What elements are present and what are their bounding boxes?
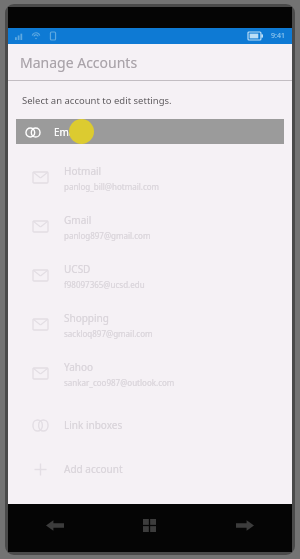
- staticText: 9:41: [271, 31, 285, 41]
- staticText: UCSD: [64, 262, 91, 276]
- button[interactable]: Yahoo: [8, 349, 292, 398]
- staticText: Gmail: [64, 213, 92, 227]
- staticText: f98097365@ucsd.edu: [64, 279, 145, 290]
- button[interactable]: Search: [197, 504, 292, 546]
- staticText: sackloq897@gmail.com: [64, 328, 153, 339]
- staticText: panlog897@gmail.com: [64, 230, 151, 241]
- button[interactable]: Home: [102, 504, 197, 546]
- button[interactable]: Link inboxes: [8, 403, 292, 447]
- button[interactable]: Email: [16, 119, 284, 144]
- button[interactable]: Hotmail: [8, 153, 292, 202]
- button[interactable]: Back: [8, 504, 102, 546]
- staticText: Manage Accounts: [20, 53, 138, 72]
- staticText: sankar_coo987@outlook.com: [64, 377, 175, 388]
- staticText: Shopping: [64, 311, 109, 325]
- staticText: panlog_bill@hotmail.com: [64, 181, 160, 192]
- staticText: Yahoo: [64, 360, 94, 374]
- staticText: Add account: [64, 462, 123, 476]
- staticText: Select an account to edit settings.: [22, 94, 172, 107]
- staticText: Email: [54, 125, 80, 139]
- staticText: Link inboxes: [64, 418, 123, 432]
- button[interactable]: UCSD: [8, 251, 292, 300]
- button[interactable]: Gmail: [8, 202, 292, 251]
- button[interactable]: Shopping: [8, 300, 292, 349]
- staticText: Hotmail: [64, 164, 102, 178]
